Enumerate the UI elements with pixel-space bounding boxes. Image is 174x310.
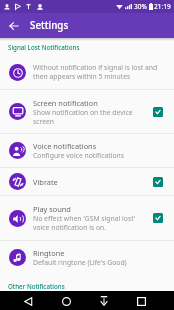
staticText: No effect when 'GSM signal lost' voice n… [33,214,136,232]
button[interactable]: Back [3,13,24,38]
staticText: Voice notifications [33,141,97,151]
staticText: Without notification if signal is lost a… [33,63,158,81]
button[interactable]: Voice notifications [0,134,174,167]
button[interactable]: Ringtone [0,241,174,274]
button[interactable]: Vibrate [0,168,174,195]
staticText: Show notification on the device screen [33,108,133,126]
button[interactable]: Play sound [0,196,174,240]
staticText: Configure voice notifications [33,151,124,160]
staticText: Play sound [33,204,71,214]
staticText: Ringtone [33,248,65,258]
staticText: 21:19 [154,2,171,11]
button[interactable]: Recents [132,292,150,310]
staticText: 30% [134,2,147,11]
staticText: Vibrate [33,177,58,187]
button[interactable]: Home [57,292,75,310]
staticText: Default ringtone (Life's Good) [33,258,127,267]
staticText: Screen notification [33,98,98,108]
button[interactable]: Screen notification [0,90,174,133]
button[interactable]: Without notification if signal is lost a… [0,55,174,89]
staticText: Settings [30,19,69,32]
staticText: Signal Lost Notifications [8,43,80,51]
button[interactable]: Download [95,292,113,310]
button[interactable]: Back [19,292,37,310]
staticText: Other Notifications [8,282,65,290]
